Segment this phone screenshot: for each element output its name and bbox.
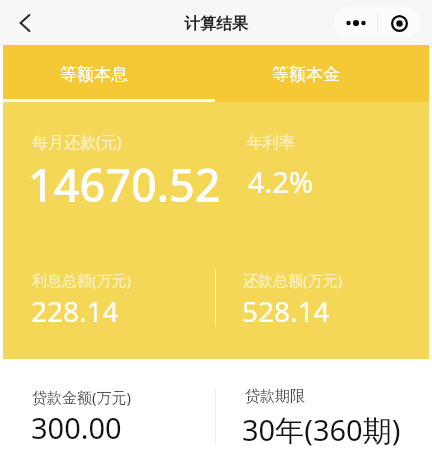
staticText: 利息总额(万元): [32, 270, 132, 290]
button[interactable]: Close mini program: [378, 7, 420, 37]
staticText: 贷款金额(万元): [32, 387, 132, 407]
staticText: 每月还款(元): [32, 131, 122, 153]
staticText: 528.14: [242, 292, 330, 330]
staticText: 贷款期限: [245, 387, 305, 406]
staticText: 还款总额(万元): [243, 270, 343, 290]
staticText: 14670.52: [28, 154, 221, 215]
staticText: 300.00: [31, 408, 122, 447]
button[interactable]: More options: [334, 7, 377, 37]
staticText: 4.2%: [248, 162, 314, 201]
staticText: 年利率: [247, 133, 295, 153]
button[interactable]: 等额本息: [3, 45, 216, 102]
staticText: 计算结果: [184, 14, 248, 34]
staticText: 等额本息: [60, 64, 128, 85]
button[interactable]: 等额本金: [216, 45, 429, 102]
staticText: 30年(360期): [242, 410, 401, 450]
button[interactable]: Back: [9, 7, 41, 39]
staticText: 228.14: [31, 292, 119, 330]
staticText: 等额本金: [272, 64, 340, 85]
